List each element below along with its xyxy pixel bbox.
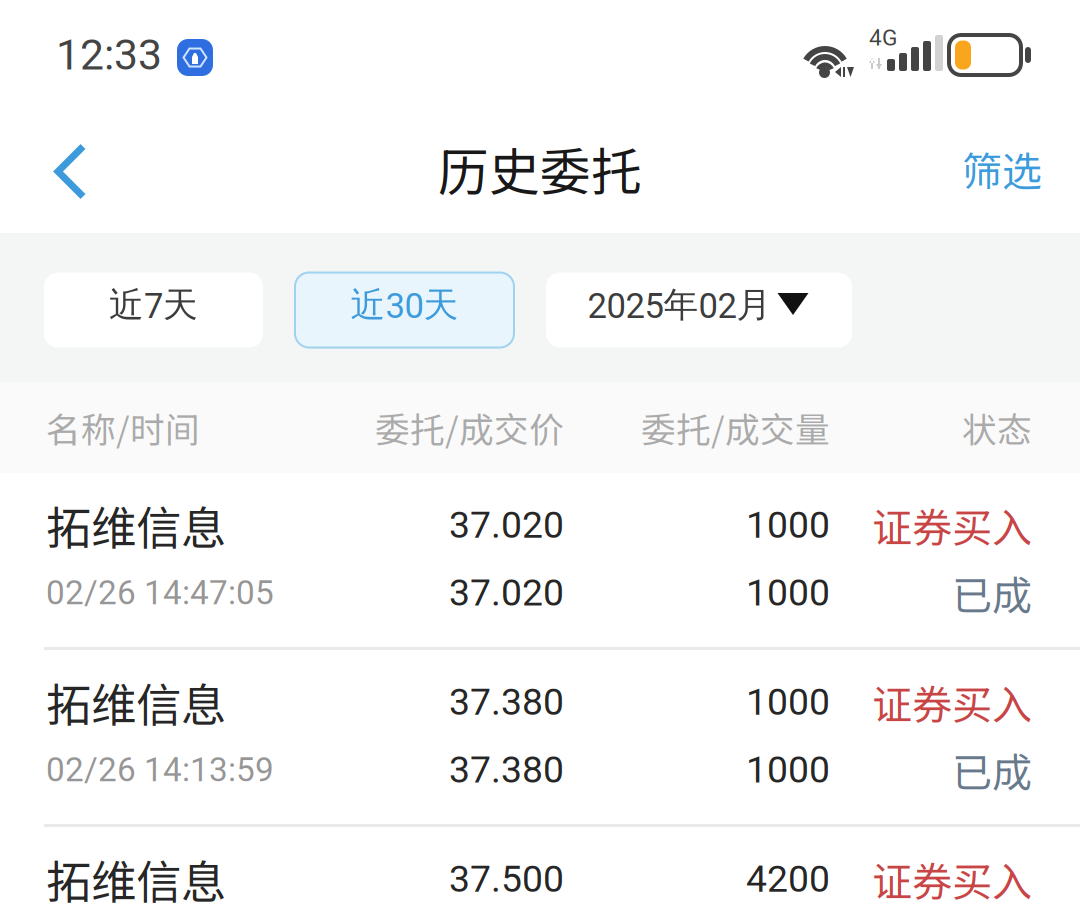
staticText: 拓维信息 [46,492,226,558]
staticText: 委托/成交价 [375,402,564,453]
button[interactable]: 2025年02月 [546,272,852,347]
button[interactable]: 拓维信息 [0,827,1080,922]
staticText: 证券买入 [872,496,1032,554]
staticText: 1000 [746,680,830,724]
staticText: 37.020 [449,503,564,547]
staticText: 筛选 [962,139,1042,197]
staticText: 委托/成交量 [641,402,830,453]
button[interactable]: 拓维信息 [0,473,1080,647]
staticText: 证券买入 [872,673,1032,731]
staticText: 2025年02月 [587,283,771,327]
button[interactable]: 筛选 [932,110,1080,232]
staticText: 4G [869,24,897,51]
staticText: 拓维信息 [46,846,226,912]
button[interactable]: 近7天 [44,272,263,347]
staticText: 1000 [746,571,830,615]
staticText: 02/26 14:13:59 [46,750,274,789]
staticText: 证券买入 [872,850,1032,908]
staticText: 历史委托 [438,132,642,205]
staticText: 1000 [746,503,830,547]
staticText: 状态 [962,402,1032,453]
staticText: 已成 [952,741,1032,799]
button[interactable]: 近30天 [295,272,514,347]
staticText: 02/26 14:47:05 [46,573,274,612]
staticText: 名称/时间 [46,402,200,453]
staticText: 37.380 [449,748,564,792]
staticText: 近30天 [350,283,458,327]
staticText: 1000 [746,748,830,792]
staticText: 37.380 [449,680,564,724]
staticText: 已成 [952,564,1032,622]
staticText: 拓维信息 [46,669,226,735]
button[interactable]: 拓维信息 [0,650,1080,824]
staticText: 37.500 [449,857,564,901]
button[interactable]: Back [0,111,122,231]
staticText: 近7天 [109,283,198,327]
staticText: 4200 [746,857,830,901]
staticText: 37.020 [449,571,564,615]
staticText: 12:33 [56,30,162,80]
